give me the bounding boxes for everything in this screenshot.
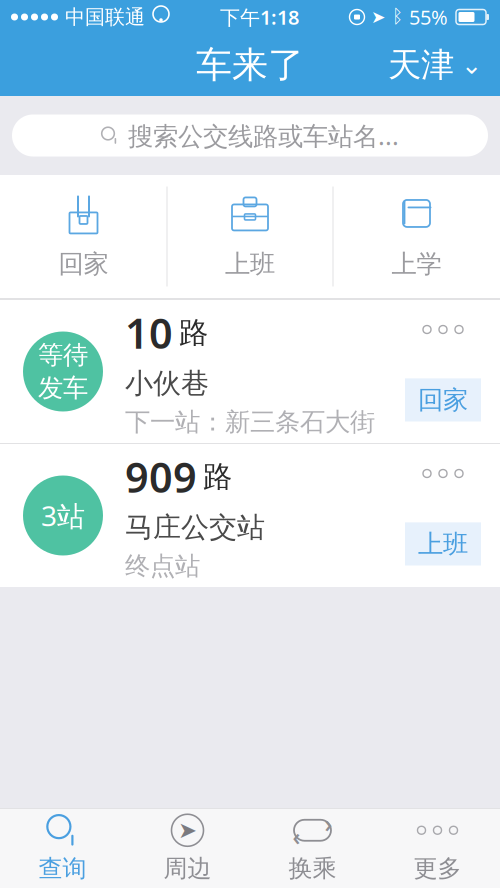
staticText: › bbox=[324, 809, 332, 839]
staticText: ➤ bbox=[371, 7, 386, 27]
button[interactable]: ➤ bbox=[125, 809, 250, 888]
button[interactable]: 天津 bbox=[380, 40, 490, 90]
staticText: ‹ bbox=[292, 822, 300, 852]
staticText: 10 bbox=[125, 305, 173, 360]
staticText: 周边 bbox=[163, 854, 211, 883]
staticText: 小伙巷 bbox=[125, 366, 209, 401]
staticText: 马庄公交站 bbox=[125, 510, 265, 545]
button[interactable]: › bbox=[250, 809, 375, 888]
staticText: 更多 bbox=[413, 854, 461, 883]
staticText: 中国联通 bbox=[65, 5, 145, 29]
staticText: 909 bbox=[125, 449, 197, 504]
button[interactable]: 等待 bbox=[0, 300, 500, 443]
staticText: 等待 bbox=[38, 339, 88, 370]
staticText: 搜索公交线路或车站名... bbox=[128, 119, 399, 152]
staticText: ᛒ bbox=[392, 8, 403, 26]
button[interactable]: 上学 bbox=[333, 175, 499, 298]
staticText: 上学 bbox=[391, 248, 441, 279]
button[interactable]: 查询 bbox=[0, 809, 125, 888]
staticText: 路 bbox=[203, 459, 232, 495]
staticText: 车来了 bbox=[196, 43, 304, 87]
staticText: ⌄ bbox=[461, 51, 482, 79]
staticText: 路 bbox=[179, 315, 208, 351]
staticText: 55% bbox=[409, 4, 448, 30]
button[interactable]: 3站 bbox=[0, 444, 500, 587]
staticText: 终点站 bbox=[125, 551, 200, 582]
staticText: 回家 bbox=[418, 384, 468, 415]
staticText: 换乘 bbox=[288, 854, 336, 883]
staticText: 查询 bbox=[38, 854, 86, 883]
staticText: 天津 bbox=[388, 44, 454, 85]
staticText: 发车 bbox=[38, 372, 88, 404]
button[interactable]: 回家 bbox=[0, 175, 166, 298]
staticText: 回家 bbox=[58, 248, 108, 279]
staticText: ➤ bbox=[178, 817, 197, 843]
staticText: 上班 bbox=[418, 528, 468, 559]
staticText: 下一站：新三条石大街 bbox=[125, 407, 375, 438]
staticText: 上班 bbox=[225, 248, 275, 279]
button[interactable]: 搜索公交线路或车站名... bbox=[12, 114, 488, 156]
staticText: 3站 bbox=[41, 497, 85, 534]
button[interactable]: 更多 bbox=[375, 809, 500, 888]
staticText: 下午1:18 bbox=[220, 4, 299, 30]
button[interactable]: 上班 bbox=[167, 175, 332, 298]
